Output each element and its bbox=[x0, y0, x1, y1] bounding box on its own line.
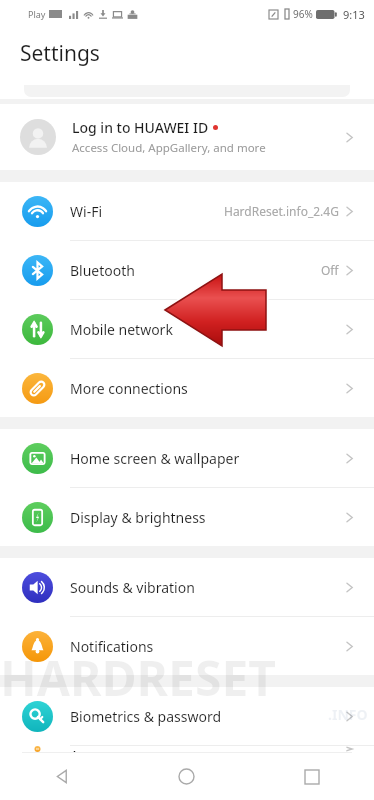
staticText: Wi-Fi bbox=[70, 202, 224, 221]
button[interactable]: Home bbox=[124, 753, 249, 800]
staticText: Bluetooth bbox=[70, 261, 321, 280]
staticText: More connections bbox=[70, 379, 345, 398]
staticText: Off bbox=[321, 262, 339, 278]
button[interactable]: Biometrics & password bbox=[0, 687, 374, 745]
button[interactable]: Apps bbox=[0, 746, 374, 752]
button[interactable]: Recent apps bbox=[249, 753, 374, 800]
button[interactable]: Home screen & wallpaper bbox=[0, 429, 374, 487]
button[interactable]: Back bbox=[0, 753, 124, 800]
staticText: Home screen & wallpaper bbox=[70, 449, 345, 468]
button[interactable]: Bluetooth bbox=[0, 241, 374, 299]
staticText: HARDRESET bbox=[0, 645, 276, 710]
button[interactable]: More connections bbox=[0, 359, 374, 417]
staticText: Apps bbox=[70, 746, 345, 752]
staticText: Notifications bbox=[70, 637, 345, 656]
staticText: HardReset.info_2.4G bbox=[224, 203, 339, 219]
staticText: Biometrics & password bbox=[70, 707, 345, 726]
staticText: Mobile network bbox=[70, 320, 345, 339]
staticText: Play bbox=[28, 8, 46, 20]
staticText: .INFO bbox=[328, 705, 368, 724]
staticText: Access Cloud, AppGallery, and more bbox=[72, 140, 266, 156]
staticText: Log in to HUAWEI ID bbox=[72, 118, 209, 137]
staticText: Settings bbox=[20, 39, 100, 68]
staticText: Sounds & vibration bbox=[70, 578, 345, 597]
button[interactable]: Wi-Fi bbox=[0, 182, 374, 240]
button[interactable]: Sounds & vibration bbox=[0, 558, 374, 616]
staticText: 9:13 bbox=[343, 7, 365, 22]
button[interactable]: Mobile network bbox=[0, 300, 374, 358]
staticText: 96% bbox=[293, 7, 313, 21]
staticText: Display & brightness bbox=[70, 508, 345, 527]
button[interactable]: Notifications bbox=[0, 617, 374, 675]
button[interactable]: Display & brightness bbox=[0, 488, 374, 546]
button[interactable]: Log in to HUAWEI ID bbox=[0, 104, 374, 170]
